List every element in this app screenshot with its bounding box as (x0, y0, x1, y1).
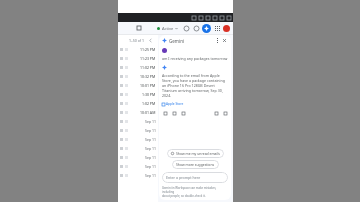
button[interactable]: Show more suggestions (172, 160, 219, 169)
button[interactable]: Browser action 3 (212, 15, 217, 20)
button[interactable]: Sep 11 (118, 171, 158, 180)
staticText: Sep 11 (145, 155, 156, 160)
button[interactable]: Close (221, 37, 228, 44)
button[interactable]: Browser action 0 (191, 15, 196, 20)
button[interactable]: More options (214, 37, 221, 44)
staticText: 1:30 PM (142, 92, 156, 97)
button[interactable]: Browser action 4 (219, 15, 224, 20)
button[interactable]: 11:02 PM (118, 63, 158, 72)
button[interactable]: Show me my unread emails (167, 149, 224, 158)
button[interactable]: 11:25 PM (118, 45, 158, 54)
button[interactable]: Regenerate (162, 110, 168, 116)
button[interactable]: Sep 11 (118, 162, 158, 171)
button[interactable]: Thumbs down (222, 110, 228, 116)
button[interactable]: Sep 11 (118, 135, 158, 144)
staticText: Sep 11 (145, 137, 156, 142)
staticText: Show me my unread emails (176, 151, 220, 156)
staticText: Sep 11 (145, 128, 156, 133)
staticText: 11:23 PM (140, 56, 156, 61)
button[interactable]: Thumbs up (213, 110, 219, 116)
button[interactable]: Browser action 2 (205, 15, 210, 20)
button[interactable]: Sep 11 (118, 153, 158, 162)
button[interactable]: Browser action 5 (226, 15, 231, 20)
staticText: Show more suggestions (176, 162, 215, 167)
button[interactable]: Enter a prompt here (162, 172, 228, 183)
button[interactable]: Search (180, 110, 186, 116)
button[interactable]: Browser action 1 (198, 15, 203, 20)
staticText: Gemini in Workspace can make mistakes, i… (162, 186, 228, 198)
staticText: According to the email from Apple Store,… (162, 73, 228, 98)
staticText: 10:01 PM (140, 83, 156, 88)
button[interactable]: 10:01 AM (118, 108, 158, 117)
staticText: 10:32 PM (140, 74, 156, 79)
button[interactable]: 1:30 PM (118, 90, 158, 99)
staticText: Sep 11 (145, 173, 156, 178)
staticText: 1–50 of 1 (129, 38, 144, 43)
staticText: Enter a prompt here (166, 175, 201, 180)
button[interactable]: 10:32 PM (118, 72, 158, 81)
staticText: Gemini (169, 38, 185, 44)
staticText: 11:25 PM (140, 47, 156, 52)
button[interactable]: History (182, 24, 190, 32)
button[interactable]: Help (192, 24, 200, 32)
staticText: 10:01 AM (140, 110, 156, 115)
staticText: Sep 11 (145, 119, 156, 124)
button[interactable]: Newer (147, 37, 153, 43)
button[interactable]: Account (223, 25, 230, 32)
staticText: Sep 11 (145, 164, 156, 169)
staticText: am I receiving any packages tomorrow (162, 56, 228, 61)
button[interactable]: Apps (213, 24, 221, 32)
staticText: Active (162, 26, 174, 31)
button[interactable]: Active (155, 26, 180, 31)
button[interactable]: Gemini (202, 24, 211, 33)
button[interactable]: Back to inbox (135, 24, 143, 32)
button[interactable]: 10:01 PM (118, 81, 158, 90)
button[interactable]: Sep 11 (118, 126, 158, 135)
button[interactable]: 1:02 PM (118, 99, 158, 108)
button[interactable]: Copy (171, 110, 177, 116)
button[interactable]: Sep 11 (118, 117, 158, 126)
button[interactable]: Apple Store (162, 101, 184, 107)
button[interactable]: Sep 11 (118, 144, 158, 153)
button[interactable]: 11:23 PM (118, 54, 158, 63)
staticText: Apple Store (166, 102, 184, 106)
staticText: 1:02 PM (142, 101, 156, 106)
staticText: Sep 11 (145, 146, 156, 151)
staticText: 11:02 PM (140, 65, 156, 70)
